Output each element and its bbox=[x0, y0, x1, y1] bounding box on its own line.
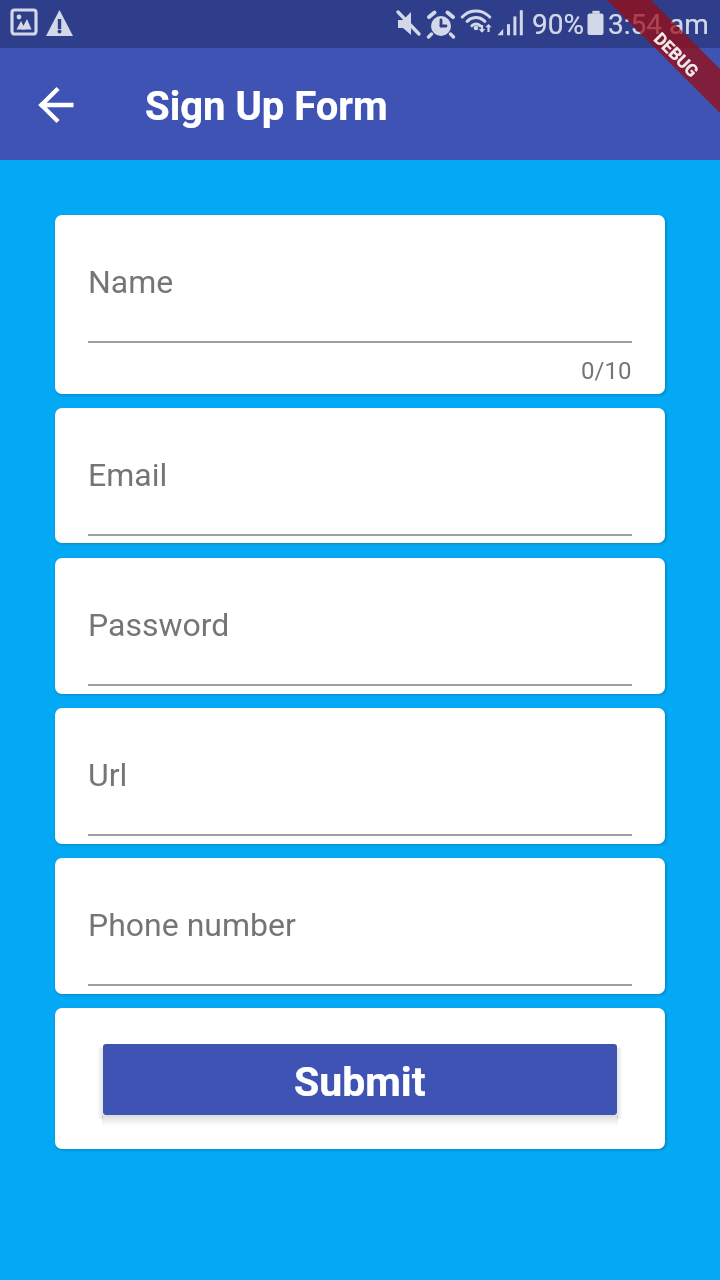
staticText: Url bbox=[88, 756, 128, 794]
staticText: Phone number bbox=[88, 906, 296, 944]
staticText: Submit bbox=[294, 1058, 426, 1106]
staticText: 90% bbox=[532, 8, 584, 41]
button[interactable]: Email bbox=[55, 408, 665, 543]
staticText: Email bbox=[88, 456, 168, 494]
button[interactable]: Back bbox=[24, 72, 88, 136]
button[interactable]: Submit bbox=[103, 1044, 617, 1115]
button[interactable]: Password bbox=[55, 558, 665, 694]
staticText: Password bbox=[88, 606, 230, 644]
button[interactable]: Phone number bbox=[55, 858, 665, 994]
button[interactable]: Name bbox=[55, 215, 665, 394]
staticText: Name bbox=[88, 263, 174, 301]
staticText: DEBUG bbox=[650, 28, 703, 81]
staticText: Sign Up Form bbox=[145, 83, 388, 130]
button[interactable]: Url bbox=[55, 708, 665, 844]
staticText: 0/10 bbox=[581, 357, 632, 385]
staticText: 3:54 am bbox=[608, 8, 709, 41]
